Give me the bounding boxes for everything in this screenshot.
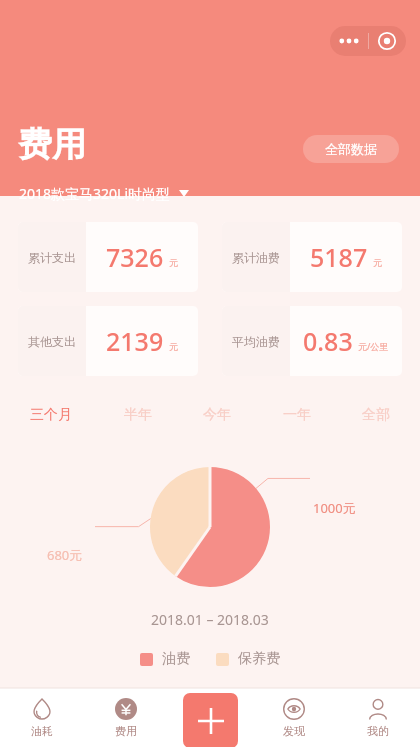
button[interactable]: 一年 [277, 400, 317, 430]
staticText: 元 [373, 257, 382, 268]
staticText: 其他支出 [28, 334, 76, 349]
staticText: 元 [169, 341, 178, 352]
staticText: 2018.01 – 2018.03 [151, 610, 269, 629]
button[interactable]: 今年 [197, 400, 237, 430]
staticText: 半年 [124, 406, 152, 424]
button[interactable]: 累计支出 [18, 222, 198, 292]
staticText: 我的 [367, 724, 389, 738]
button[interactable]: Add record [183, 693, 238, 747]
button[interactable]: More options [330, 26, 406, 56]
staticText: 元/公里 [358, 340, 389, 352]
staticText: 全部数据 [325, 141, 377, 157]
button[interactable]: 三个月 [24, 400, 78, 430]
staticText: 油费 [162, 650, 190, 668]
staticText: 费用 [18, 123, 86, 166]
button[interactable]: 发现 [252, 688, 336, 747]
staticText: 7326 [106, 240, 164, 274]
button[interactable]: 油耗 [0, 688, 84, 747]
staticText: 0.83 [303, 324, 353, 358]
staticText: 今年 [203, 406, 231, 424]
staticText: 累计支出 [28, 250, 76, 265]
staticText: 2018款宝马320Li时尚型 [19, 184, 171, 203]
staticText: 680元 [47, 546, 83, 564]
button[interactable]: 累计油费 [222, 222, 402, 292]
staticText: 累计油费 [232, 250, 280, 265]
button[interactable]: 费用 [84, 688, 168, 747]
button[interactable]: 半年 [118, 400, 158, 430]
button[interactable]: 其他支出 [18, 306, 198, 376]
button[interactable]: 2018款宝马320Li时尚型 [19, 184, 189, 203]
staticText: 油耗 [31, 724, 53, 738]
staticText: 保养费 [238, 650, 280, 668]
staticText: 5187 [310, 240, 368, 274]
staticText: 平均油费 [232, 334, 280, 349]
button[interactable]: 保养费 [216, 650, 280, 668]
staticText: 一年 [283, 406, 311, 424]
button[interactable]: 油费 [140, 650, 190, 668]
staticText: 三个月 [30, 406, 72, 424]
button[interactable]: 全部 [356, 400, 396, 430]
staticText: 元 [169, 257, 178, 268]
button[interactable]: 我的 [336, 688, 420, 747]
staticText: 1000元 [313, 499, 356, 517]
staticText: 全部 [362, 406, 390, 424]
staticText: 费用 [115, 724, 137, 738]
button[interactable]: 平均油费 [222, 306, 402, 376]
staticText: 2139 [106, 324, 164, 358]
button[interactable]: 全部数据 [303, 135, 399, 163]
staticText: 发现 [283, 724, 305, 738]
